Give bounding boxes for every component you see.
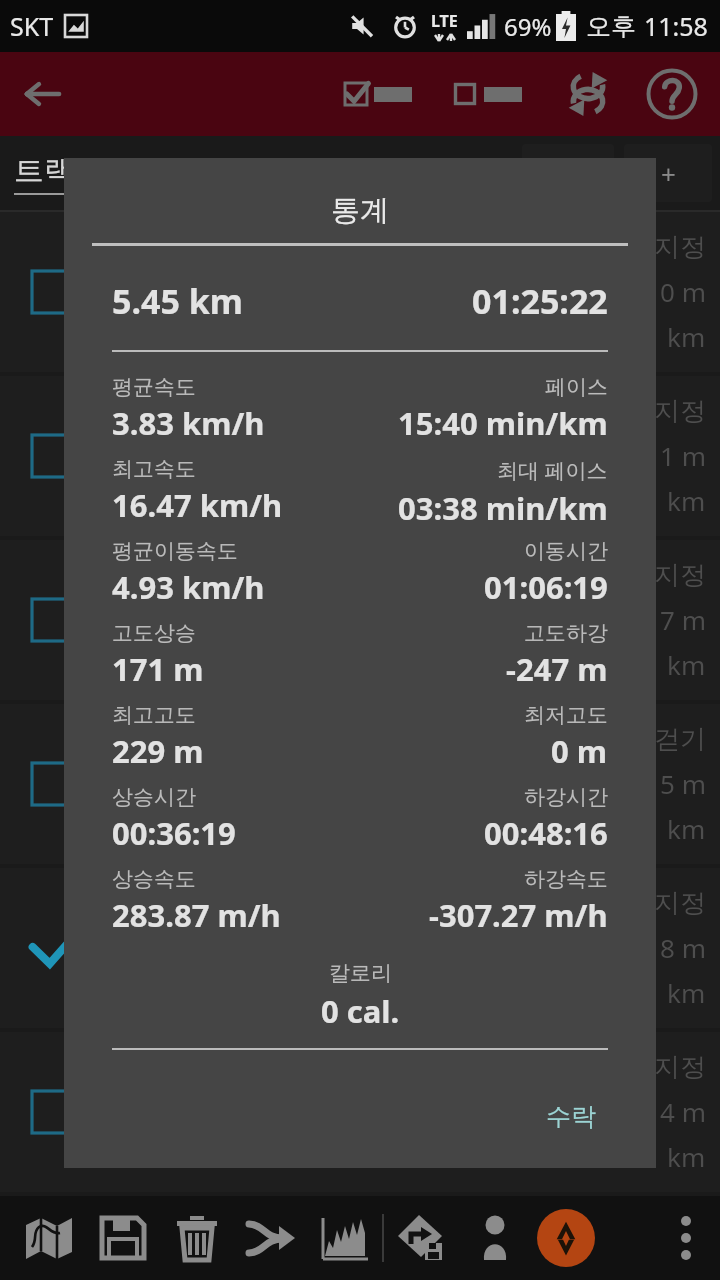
staticText: 오후 xyxy=(586,11,636,42)
staticText: 4.93 km/h xyxy=(112,566,265,608)
staticText: 0 m xyxy=(551,730,608,772)
staticText: km xyxy=(667,319,706,354)
staticText: 229 m xyxy=(112,730,204,772)
button[interactable]: 지정 xyxy=(0,376,720,536)
staticText: km xyxy=(667,1139,706,1174)
staticText: 7 m xyxy=(660,602,706,637)
staticText: 최고속도 xyxy=(112,456,196,482)
button[interactable]: 지정 xyxy=(0,868,720,1028)
staticText: 01:06:19 xyxy=(484,566,608,608)
staticText: -247 m xyxy=(506,648,608,690)
staticText: 고도상승 xyxy=(112,620,196,646)
staticText: 지정 xyxy=(654,887,706,920)
staticText: 11:58 xyxy=(644,9,708,43)
button[interactable]: Help xyxy=(630,52,714,136)
staticText: 지정 xyxy=(654,1051,706,1084)
button[interactable]: Deselect all xyxy=(440,52,536,136)
button[interactable]: Select all xyxy=(330,52,426,136)
staticText: 통계 xyxy=(64,192,656,229)
staticText: km xyxy=(667,483,706,518)
button[interactable]: 수락 xyxy=(534,1093,608,1140)
staticText: 00:36:19 xyxy=(112,812,236,854)
staticText: 하강시간 xyxy=(524,784,608,810)
staticText: 고도하강 xyxy=(524,620,608,646)
button[interactable]: Merge xyxy=(234,1196,308,1280)
staticText: LTE xyxy=(431,10,458,32)
staticText: 283.87 m/h xyxy=(112,894,281,936)
button[interactable]: Back xyxy=(0,52,84,136)
staticText: 이동시간 xyxy=(524,538,608,564)
staticText: 페이스 xyxy=(545,374,608,400)
staticText: 69% xyxy=(504,10,552,43)
staticText: 평균속도 xyxy=(112,374,196,400)
button[interactable]: Map xyxy=(12,1196,86,1280)
staticText: 0 m xyxy=(660,274,706,309)
button[interactable]: Navigate and save xyxy=(384,1196,458,1280)
button[interactable]: 지정 xyxy=(0,212,720,372)
staticText: km xyxy=(667,975,706,1010)
button[interactable]: Chart xyxy=(308,1196,382,1280)
staticText: km xyxy=(667,811,706,846)
staticText: 5 m xyxy=(660,766,706,801)
staticText: 03:38 min/km xyxy=(398,487,608,529)
button[interactable]: 걷기 xyxy=(0,704,720,864)
staticText: 3.83 km/h xyxy=(112,402,265,444)
button[interactable]: More options xyxy=(660,1196,712,1280)
staticText: 16.47 km/h xyxy=(112,484,283,526)
staticText: 상승시간 xyxy=(112,784,196,810)
staticText: 평균이동속도 xyxy=(112,538,238,564)
staticText: 0 cal. xyxy=(321,990,400,1032)
staticText: 트랙 xyxy=(14,152,74,190)
staticText: + xyxy=(661,156,676,191)
staticText: 지정 xyxy=(654,395,706,428)
button[interactable]: Tab xyxy=(522,144,614,202)
button[interactable]: Delete xyxy=(160,1196,234,1280)
staticText: 지정 xyxy=(654,559,706,592)
button[interactable]: Strava xyxy=(532,1204,600,1272)
staticText: 8 m xyxy=(660,930,706,965)
button[interactable]: 지정 xyxy=(0,540,720,700)
button[interactable]: Save xyxy=(86,1196,160,1280)
button[interactable]: Refresh xyxy=(546,52,630,136)
staticText: 하강속도 xyxy=(524,866,608,892)
staticText: 최대 페이스 xyxy=(497,456,608,485)
staticText: 칼로리 xyxy=(329,960,392,986)
button[interactable]: Add xyxy=(624,144,712,202)
staticText: 수락 xyxy=(546,1101,596,1132)
button[interactable]: 지정 xyxy=(0,1032,720,1192)
staticText: 171 m xyxy=(112,648,204,690)
staticText: 최고고도 xyxy=(112,702,196,728)
staticText: 최저고도 xyxy=(524,702,608,728)
staticText: km xyxy=(667,647,706,682)
staticText: 5.45 km xyxy=(112,278,243,324)
staticText: 00:48:16 xyxy=(484,812,608,854)
staticText: 걷기 xyxy=(654,723,706,756)
button[interactable]: Profile xyxy=(458,1196,532,1280)
staticText: 15:40 min/km xyxy=(398,402,608,444)
staticText: 01:25:22 xyxy=(472,278,608,324)
staticText: -307.27 m/h xyxy=(429,894,608,936)
staticText: 상승속도 xyxy=(112,866,196,892)
staticText: SKT xyxy=(10,9,54,43)
staticText: 4 m xyxy=(660,1094,706,1129)
staticText: 1 m xyxy=(660,438,706,473)
staticText: 지정 xyxy=(654,231,706,264)
